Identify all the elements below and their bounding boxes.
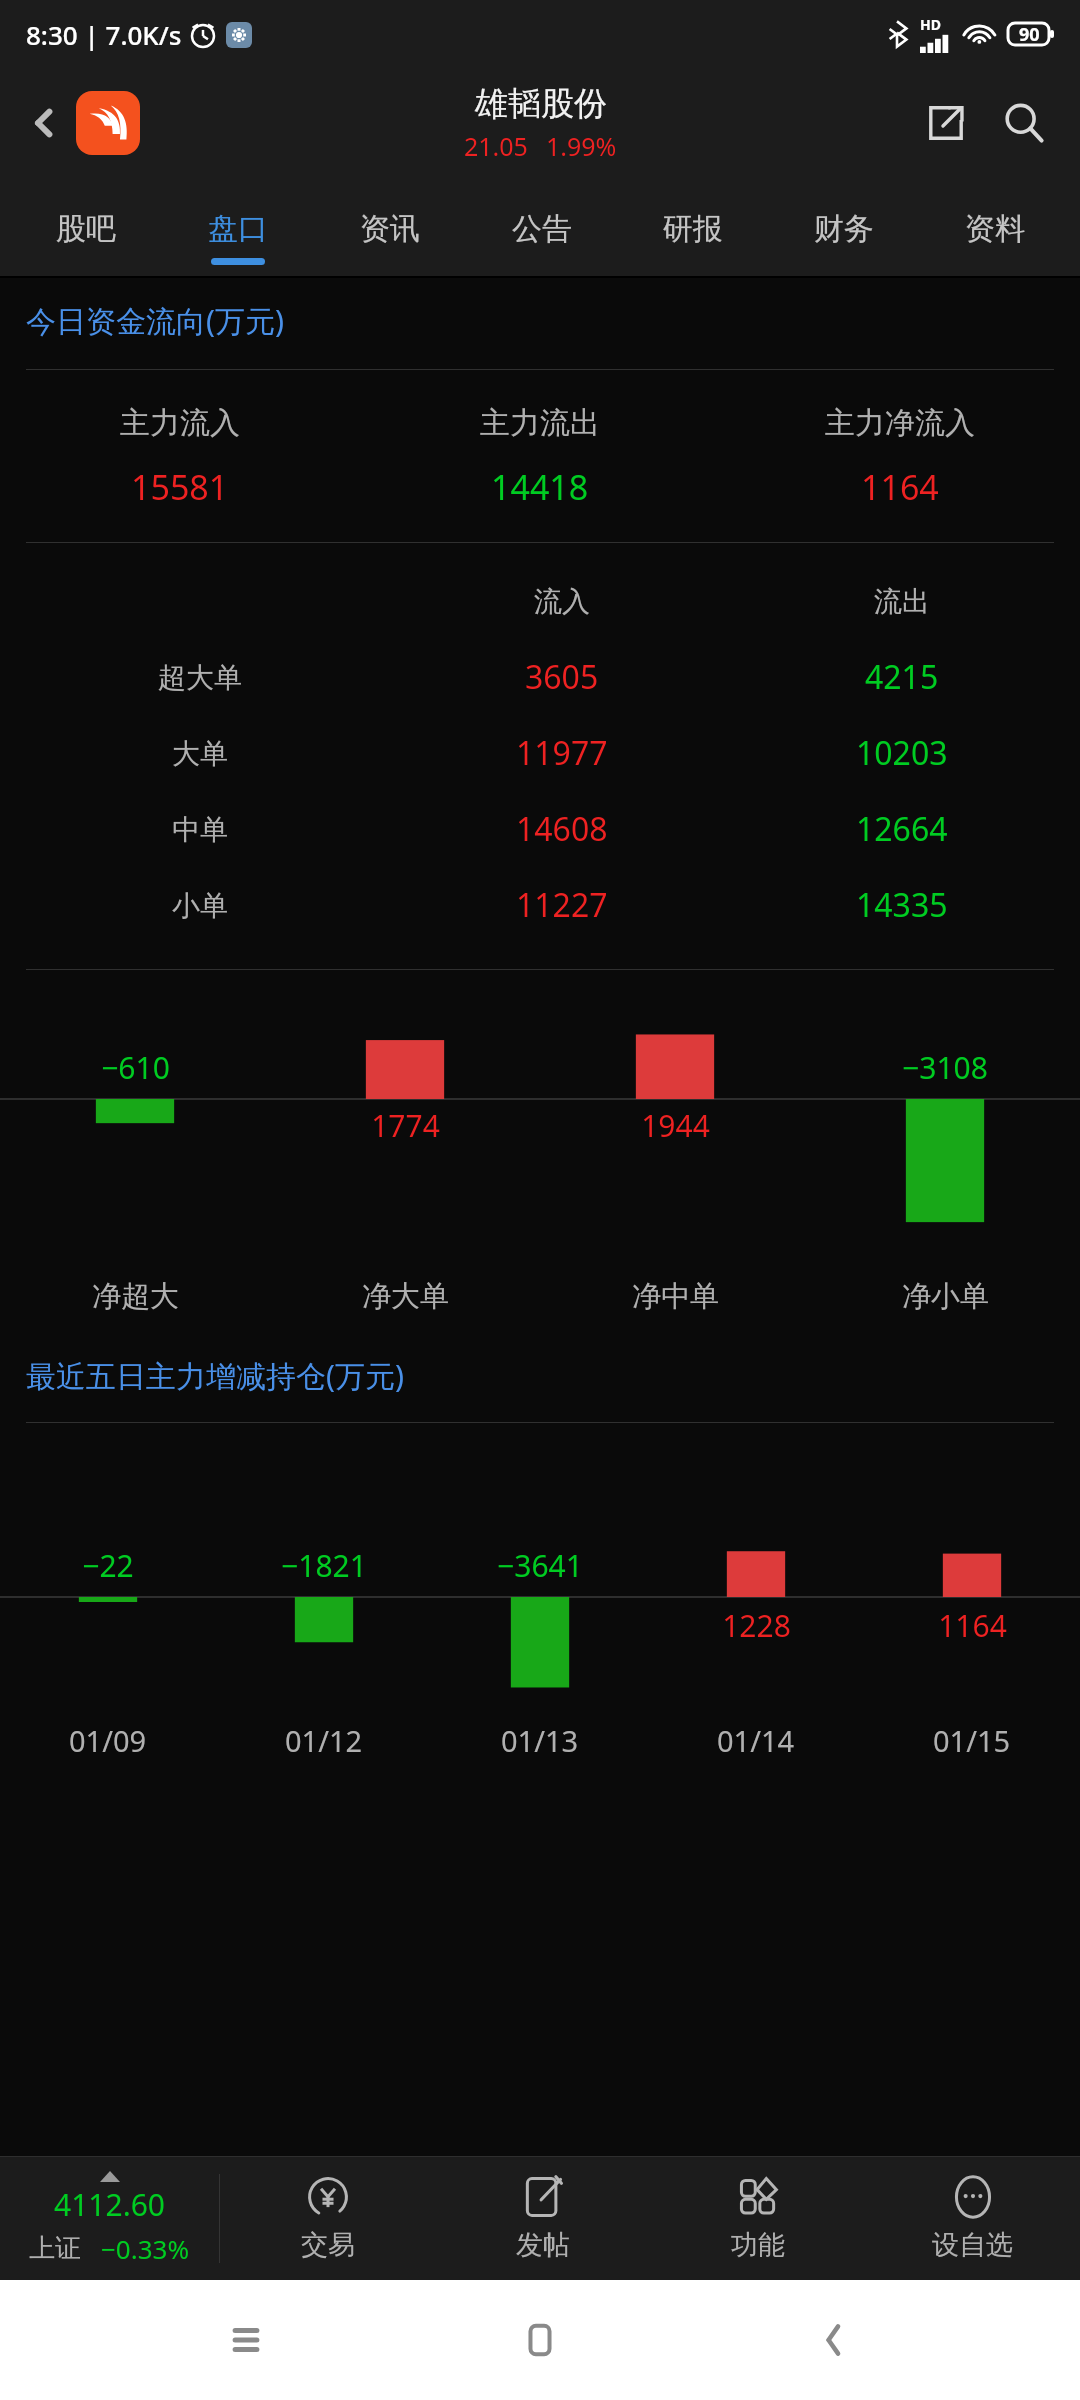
staticText: 1228 (722, 1605, 791, 1646)
staticText: 1774 (371, 1105, 440, 1146)
staticText: 流入 (534, 584, 590, 619)
staticText: 4112.60 (54, 2184, 165, 2225)
button[interactable]: Back (16, 95, 72, 151)
staticText: 大单 (172, 736, 228, 771)
staticText: 净小单 (902, 1278, 989, 1315)
staticText: 01/13 (501, 1721, 579, 1760)
button[interactable]: Share (914, 91, 978, 155)
staticText: HD (920, 15, 941, 34)
button[interactable]: Search (992, 91, 1056, 155)
button[interactable]: 发帖 (435, 2156, 650, 2280)
staticText: 主力净流入 (825, 404, 975, 442)
staticText: 交易 (301, 2228, 355, 2262)
staticText: 设自选 (932, 2228, 1013, 2262)
button[interactable]: 财务 (768, 178, 919, 278)
staticText: 14418 (491, 464, 589, 510)
staticText: −3641 (497, 1545, 583, 1586)
button[interactable]: 交易 (220, 2156, 435, 2280)
staticText: 资料 (965, 210, 1025, 248)
button[interactable]: 资讯 (314, 178, 466, 278)
staticText: 盘口 (208, 210, 268, 248)
staticText: 上证 (29, 2232, 81, 2265)
button[interactable]: 资料 (919, 178, 1070, 278)
staticText: 1164 (861, 464, 939, 510)
staticText: 公告 (512, 210, 572, 248)
staticText: 功能 (731, 2228, 785, 2262)
staticText: 11977 (516, 731, 608, 775)
button[interactable]: Recents (198, 2292, 294, 2388)
button[interactable]: Back (786, 2292, 882, 2388)
staticText: 11227 (516, 883, 608, 927)
staticText: −22 (82, 1545, 134, 1586)
staticText: 01/14 (717, 1721, 795, 1760)
staticText: 超大单 (158, 660, 242, 695)
staticText: 14608 (516, 807, 608, 851)
staticText: 净超大 (92, 1278, 179, 1315)
button[interactable]: 4112.60 (0, 2156, 219, 2280)
staticText: 10203 (856, 731, 948, 775)
staticText: 1944 (641, 1105, 710, 1146)
staticText: −610 (101, 1047, 170, 1088)
staticText: 90 (1019, 22, 1040, 47)
staticText: 4215 (865, 655, 939, 699)
staticText: −0.33% (101, 2231, 190, 2266)
button[interactable]: App logo (76, 91, 140, 155)
staticText: 1164 (938, 1605, 1007, 1646)
staticText: 主力流入 (120, 404, 240, 442)
staticText: 最近五日主力增减持仓(万元) (26, 1355, 404, 1396)
staticText: 小单 (172, 888, 228, 923)
staticText: −3108 (902, 1047, 988, 1088)
staticText: 14335 (856, 883, 948, 927)
staticText: −1821 (281, 1545, 367, 1586)
staticText: 流出 (874, 584, 930, 619)
staticText: 净中单 (632, 1278, 719, 1315)
button[interactable]: 股吧 (10, 178, 162, 278)
staticText: 财务 (814, 210, 874, 248)
staticText: 净大单 (362, 1278, 449, 1315)
staticText: 01/15 (933, 1721, 1011, 1760)
staticText: 主力流出 (480, 404, 600, 442)
staticText: 资讯 (360, 210, 420, 248)
staticText: 21.05 (464, 129, 528, 163)
button[interactable]: 设自选 (865, 2156, 1080, 2280)
staticText: 3605 (525, 655, 599, 699)
staticText: 15581 (131, 464, 229, 510)
button[interactable]: Home (492, 2292, 588, 2388)
staticText: 雄韬股份 (475, 83, 607, 125)
staticText: 发帖 (516, 2228, 570, 2262)
staticText: 12664 (856, 807, 948, 851)
staticText: 8:30 | 7.0K/s (26, 17, 182, 52)
button[interactable]: 公告 (466, 178, 617, 278)
staticText: 研报 (663, 210, 723, 248)
staticText: 01/12 (285, 1721, 363, 1760)
staticText: 1.99% (546, 129, 617, 163)
staticText: 01/09 (69, 1721, 147, 1760)
button[interactable]: 功能 (650, 2156, 865, 2280)
button[interactable]: 研报 (617, 178, 768, 278)
staticText: 今日资金流向(万元) (26, 300, 284, 341)
button[interactable]: 盘口 (162, 178, 314, 278)
staticText: 股吧 (56, 210, 116, 248)
staticText: 中单 (172, 812, 228, 847)
